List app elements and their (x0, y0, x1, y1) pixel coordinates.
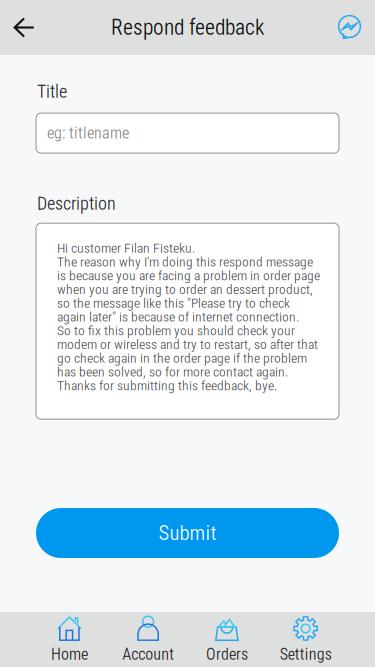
staticText: Orders (206, 645, 248, 664)
button[interactable]: Orders (187, 612, 266, 667)
button[interactable]: Back (0, 0, 48, 55)
staticText: Hi customer Filan Fisteku. The reason wh… (57, 240, 320, 393)
button[interactable]: Open messenger (324, 0, 375, 55)
staticText: Home (51, 645, 88, 664)
staticText: Account (122, 645, 174, 664)
button[interactable]: Home (30, 612, 109, 667)
button[interactable]: Settings (266, 612, 345, 667)
button[interactable]: Account (109, 612, 188, 667)
staticText: Description (37, 193, 116, 214)
staticText: Settings (280, 645, 332, 664)
staticText: eg: titlename (47, 124, 129, 142)
staticText: Title (37, 81, 67, 102)
staticText: Respond feedback (111, 15, 264, 40)
staticText: Submit (158, 521, 216, 545)
button[interactable]: Submit (0, 508, 375, 558)
